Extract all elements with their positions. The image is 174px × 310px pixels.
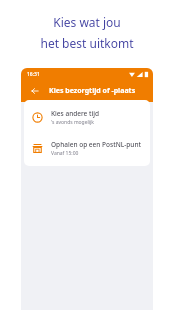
staticText: 's avonds mogelijk: [51, 119, 95, 126]
staticText: het best uitkomt: [40, 35, 134, 51]
staticText: Kies andere tijd: [51, 109, 100, 118]
staticText: Ophalen op een PostNL-punt: [51, 140, 141, 149]
staticText: Kies bezorgtijd of -plaats: [49, 86, 136, 96]
button[interactable]: Terug: [27, 83, 43, 99]
staticText: 16:31: [27, 71, 40, 78]
button[interactable]: Kies andere tijd: [24, 106, 150, 129]
staticText: Vanaf 15:00: [51, 150, 79, 157]
staticText: Kies wat jou: [53, 14, 121, 30]
button[interactable]: Ophalen op een PostNL-punt: [24, 137, 150, 160]
